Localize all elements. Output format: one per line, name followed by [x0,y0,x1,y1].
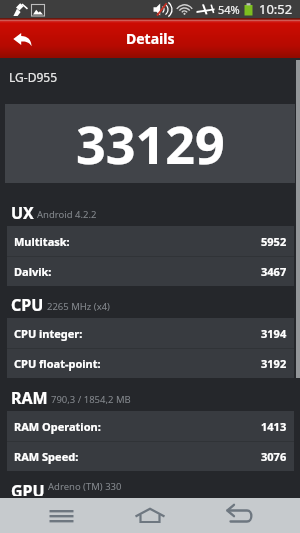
staticText: 3194 [261,326,287,341]
button[interactable]: Back [0,18,44,58]
button[interactable]: CPU float-point: [7,349,294,378]
button[interactable]: Dalvik: [7,257,294,286]
staticText: 33129 [76,108,225,179]
staticText: CPU float-point: [14,356,101,371]
button[interactable]: Multitask: [7,226,294,256]
staticText: Adreno (TM) 330 [48,480,122,493]
staticText: 10:52 [259,0,293,18]
button[interactable]: CPU integer: [7,318,294,348]
staticText: 5952 [261,234,287,249]
staticText: UX [11,202,34,224]
staticText: CPU integer: [14,326,83,341]
staticText: CPU [11,294,44,316]
staticText: RAM Operation: [14,419,101,434]
staticText: Dalvik: [14,264,52,279]
staticText: 3467 [261,264,287,279]
button[interactable]: Back [204,498,276,533]
button[interactable]: Home [114,498,186,533]
staticText: GPU [11,480,45,496]
staticText: 790,3 / 1854,2 MB [51,393,131,406]
staticText: 2265 MHz (x4) [47,300,110,313]
button[interactable]: Menu [25,498,97,533]
staticText: RAM Speed: [14,449,79,464]
staticText: 3076 [261,449,287,464]
staticText: Android 4.2.2 [37,208,97,221]
staticText: Multitask: [14,234,70,249]
button[interactable]: RAM Speed: [7,442,294,471]
staticText: LG-D955 [9,69,58,85]
button[interactable]: RAM Operation: [7,411,294,441]
staticText: Details [126,29,175,48]
staticText: 3192 [261,356,287,371]
staticText: 1413 [261,419,287,434]
staticText: 54% [218,2,240,17]
staticText: RAM [11,387,48,409]
